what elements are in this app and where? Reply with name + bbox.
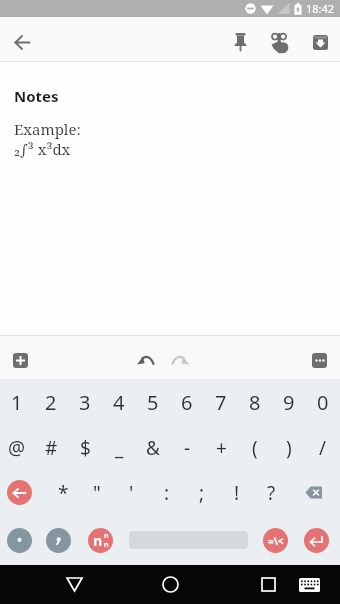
button[interactable]: + [204, 425, 238, 470]
button[interactable]: 4 [102, 379, 136, 425]
staticText: @ [8, 435, 26, 461]
button[interactable]: ) [272, 425, 306, 470]
button[interactable]: _ [102, 425, 136, 470]
button[interactable] [260, 20, 300, 64]
staticText: * [58, 480, 69, 506]
staticText: - [184, 435, 191, 461]
staticText: ? [267, 480, 276, 506]
button[interactable] [304, 528, 329, 553]
staticText: 0 [317, 389, 329, 416]
staticText: ' [129, 480, 134, 506]
button[interactable] [289, 470, 340, 515]
button[interactable]: : [149, 470, 184, 515]
staticText: 8 [249, 389, 261, 416]
staticText: =\< [268, 534, 284, 548]
button[interactable]: 1 [0, 379, 34, 425]
button[interactable]: * [46, 470, 80, 515]
button[interactable] [244, 565, 292, 604]
button[interactable]: # [34, 425, 68, 470]
button[interactable] [220, 20, 260, 64]
button[interactable] [7, 528, 32, 553]
staticText: _ [115, 435, 124, 461]
staticText: ₂∫³ x³dx [14, 139, 71, 159]
staticText: n [104, 531, 109, 541]
staticText: Example: [14, 119, 81, 139]
staticText: ; [199, 480, 205, 506]
button[interactable] [312, 353, 327, 368]
button[interactable]: 8 [238, 379, 272, 425]
button[interactable]: " [80, 470, 114, 515]
button[interactable]: @ [0, 425, 34, 470]
staticText: / [319, 435, 327, 461]
button[interactable] [133, 347, 159, 373]
button[interactable] [289, 565, 329, 604]
button[interactable] [13, 353, 28, 368]
staticText: " [93, 480, 101, 506]
button[interactable]: ! [219, 470, 254, 515]
staticText: 3 [79, 389, 91, 416]
staticText: ! [234, 480, 240, 506]
staticText: Notes [14, 86, 59, 106]
staticText: 6 [181, 389, 193, 416]
button[interactable]: =\< [263, 528, 288, 553]
staticText: # [45, 435, 58, 461]
button[interactable]: ( [238, 425, 272, 470]
button[interactable]: 3 [68, 379, 102, 425]
button[interactable] [0, 20, 44, 64]
button[interactable]: 2 [34, 379, 68, 425]
button[interactable]: 7 [204, 379, 238, 425]
staticText: 1 [11, 389, 23, 416]
button[interactable]: - [170, 425, 204, 470]
button[interactable] [167, 347, 193, 373]
staticText: 2 [45, 389, 57, 416]
button[interactable]: 5 [136, 379, 170, 425]
staticText: n [93, 531, 103, 550]
button[interactable]: ; [184, 470, 219, 515]
staticText: 5 [147, 389, 159, 416]
staticText: + [216, 435, 227, 461]
staticText: : [164, 480, 170, 506]
staticText: 7 [215, 389, 227, 416]
button[interactable]: n [88, 528, 113, 553]
button[interactable]: ? [254, 470, 289, 515]
button[interactable] [300, 20, 340, 64]
staticText: & [146, 435, 160, 461]
staticText: ) [286, 435, 292, 461]
button[interactable] [50, 565, 98, 604]
button[interactable] [46, 528, 71, 553]
staticText: ( [252, 435, 258, 461]
staticText: 4 [113, 389, 125, 416]
button[interactable] [146, 565, 194, 604]
staticText: 18:42 [306, 1, 335, 16]
button[interactable] [7, 480, 32, 505]
button[interactable]: $ [68, 425, 102, 470]
button[interactable]: 0 [306, 379, 340, 425]
button[interactable]: ' [114, 470, 149, 515]
button[interactable]: / [306, 425, 340, 470]
staticText: 9 [283, 389, 295, 416]
button[interactable]: 9 [272, 379, 306, 425]
staticText: n [104, 540, 109, 550]
button[interactable]: & [136, 425, 170, 470]
button[interactable]: 6 [170, 379, 204, 425]
staticText: $ [80, 435, 91, 461]
